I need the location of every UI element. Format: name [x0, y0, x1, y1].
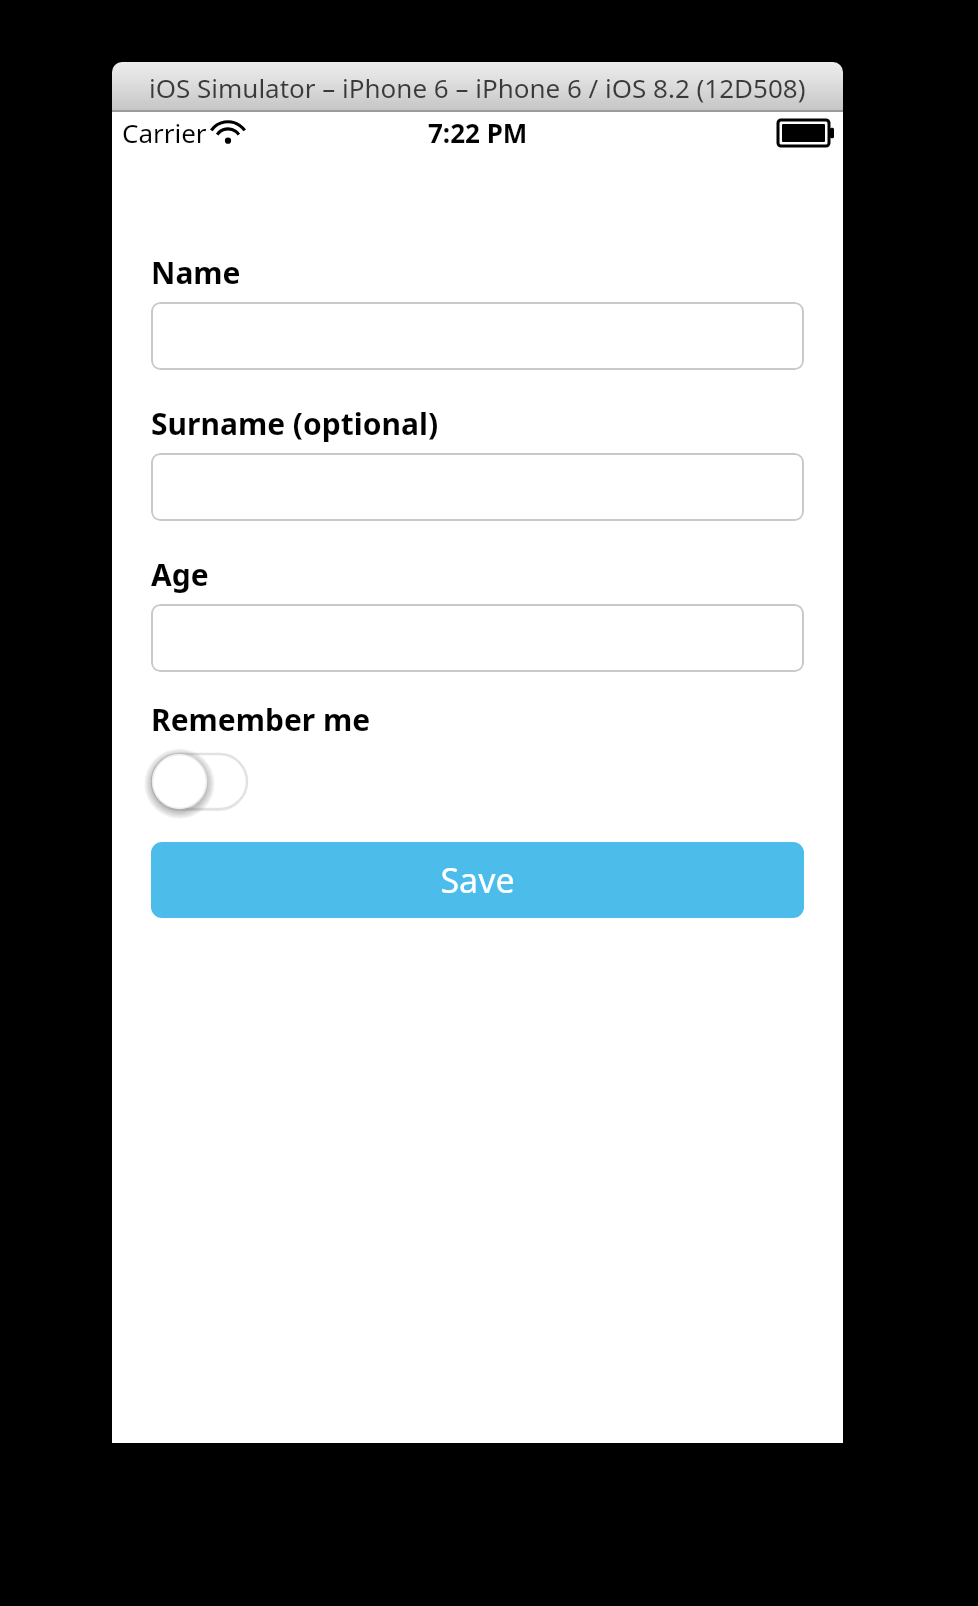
- button[interactable]: Remember me toggle: [151, 753, 248, 810]
- staticText: Name: [151, 252, 241, 293]
- staticText: iOS Simulator – iPhone 6 – iPhone 6 / iO…: [149, 70, 806, 105]
- staticText: Age: [151, 554, 209, 595]
- button[interactable]: Save: [151, 842, 804, 918]
- staticText: 7:22 PM: [428, 115, 528, 150]
- button[interactable]: [151, 453, 804, 521]
- staticText: Save: [440, 857, 515, 903]
- staticText: Remember me: [151, 699, 371, 740]
- button[interactable]: [151, 604, 804, 672]
- button[interactable]: [151, 302, 804, 370]
- staticText: Surname (optional): [151, 403, 439, 444]
- staticText: Carrier: [122, 115, 207, 150]
